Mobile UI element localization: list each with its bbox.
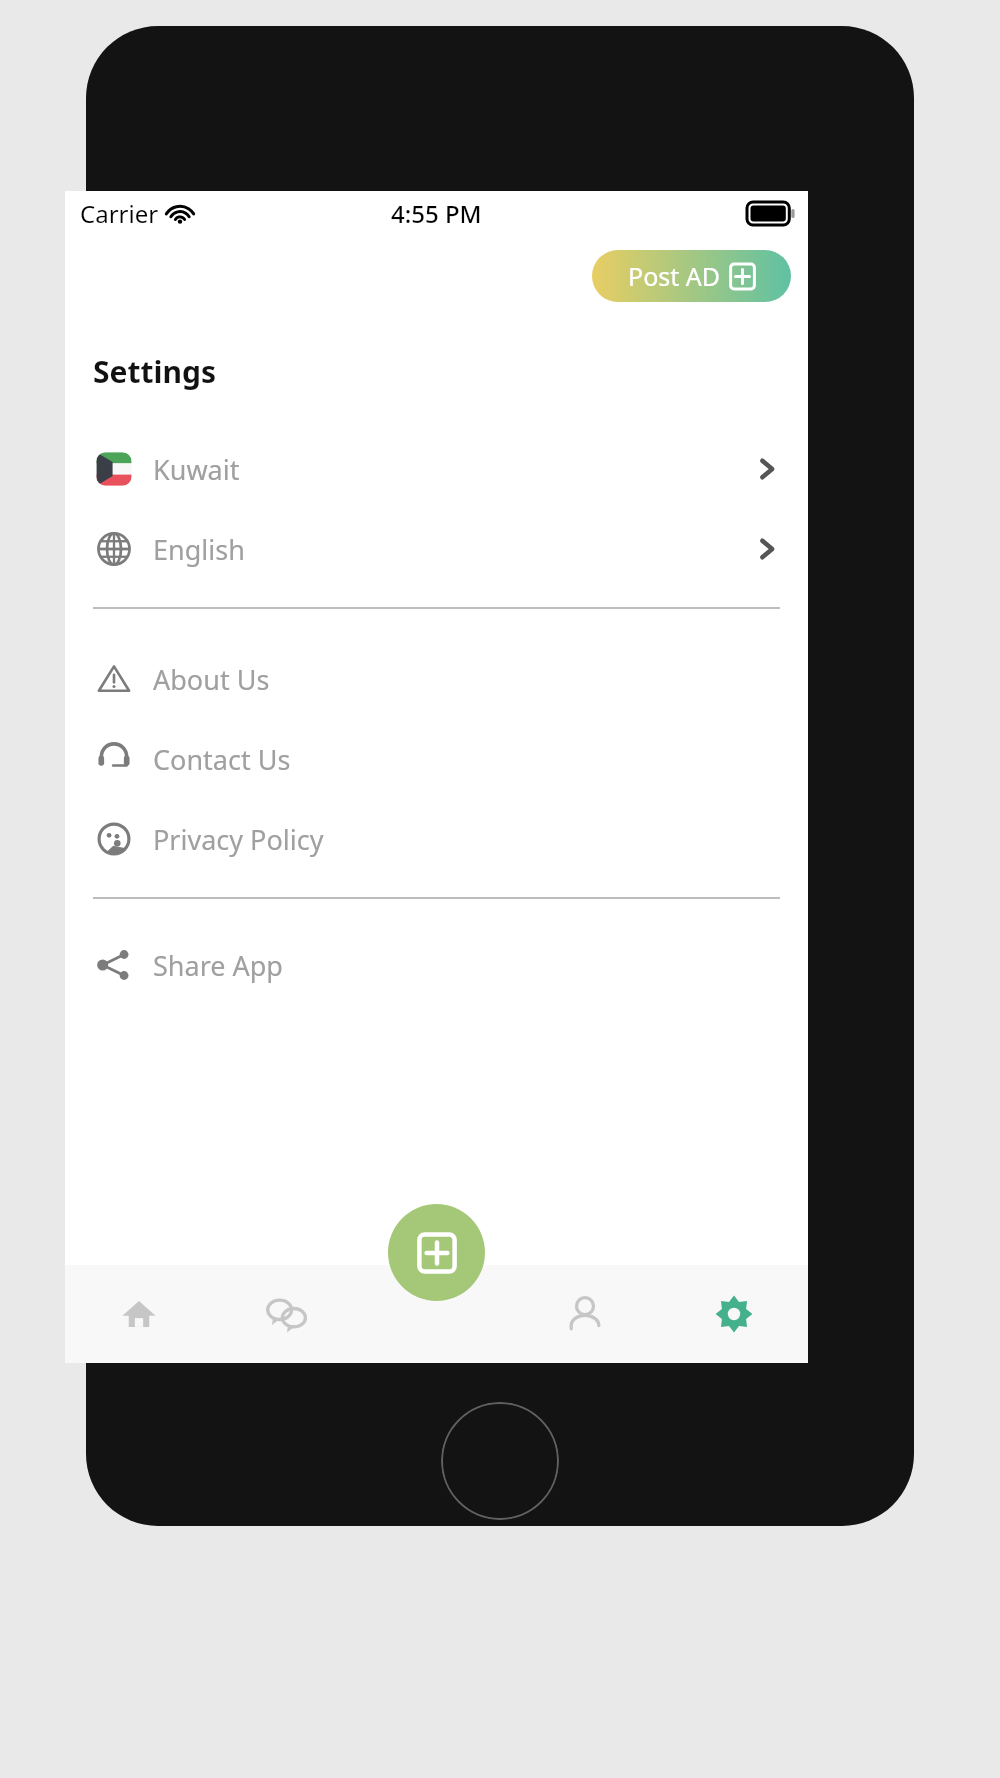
button[interactable]: Profile xyxy=(510,1265,659,1363)
button[interactable]: English xyxy=(65,509,808,589)
button[interactable]: Chat xyxy=(213,1265,361,1363)
staticText: 4:55 PM xyxy=(391,197,482,230)
button[interactable]: Privacy Policy xyxy=(65,799,808,879)
button[interactable]: Home xyxy=(65,1265,213,1363)
staticText: Carrier xyxy=(80,197,159,230)
staticText: Settings xyxy=(93,351,216,392)
staticText: English xyxy=(153,531,245,568)
staticText: Share App xyxy=(153,947,283,984)
button[interactable]: Settings xyxy=(659,1265,808,1363)
staticText: Post AD xyxy=(628,259,720,293)
button[interactable]: Post new ad xyxy=(388,1204,485,1301)
button[interactable]: Share App xyxy=(65,925,808,1005)
staticText: Kuwait xyxy=(153,451,240,488)
staticText: Privacy Policy xyxy=(153,821,324,858)
button[interactable]: Contact Us xyxy=(65,719,808,799)
button[interactable]: Post AD xyxy=(592,250,791,302)
staticText: About Us xyxy=(153,661,270,698)
button[interactable]: Kuwait xyxy=(65,429,808,509)
button[interactable]: About Us xyxy=(65,639,808,719)
staticText: Contact Us xyxy=(153,741,291,778)
